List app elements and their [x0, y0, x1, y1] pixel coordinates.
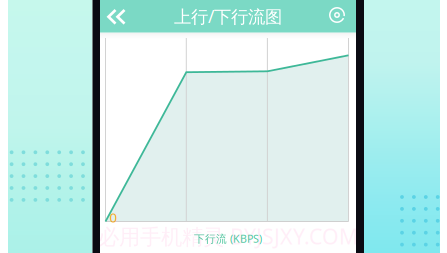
staticText: 下行流 (KBPS) — [194, 231, 262, 246]
button[interactable]: Back — [101, 3, 132, 31]
staticText: 0 — [109, 208, 117, 226]
staticText: 上行/下行流图 — [174, 5, 282, 28]
button[interactable]: Refresh — [324, 2, 350, 28]
staticText: 必用手机精灵 BYJSJXY.COM — [98, 222, 358, 250]
